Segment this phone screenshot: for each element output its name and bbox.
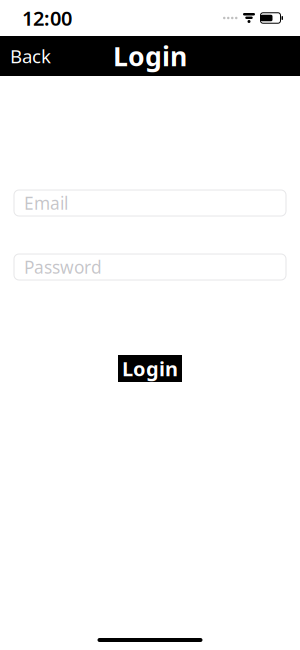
staticText: 12:00 — [22, 5, 72, 31]
button[interactable]: Email — [14, 190, 286, 216]
staticText: Password — [24, 255, 102, 278]
staticText: Login — [122, 355, 178, 382]
button[interactable]: Login — [118, 355, 182, 382]
button[interactable]: Password — [14, 254, 286, 280]
staticText: Back — [10, 44, 51, 68]
staticText: Login — [113, 38, 187, 74]
button[interactable]: Back — [0, 36, 61, 76]
staticText: Email — [24, 191, 68, 214]
